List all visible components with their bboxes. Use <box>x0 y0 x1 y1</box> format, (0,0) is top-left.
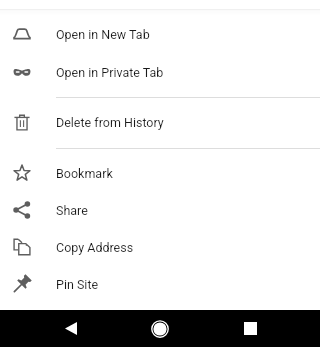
button[interactable]: Home <box>136 310 184 347</box>
button[interactable]: Recent apps <box>226 310 274 347</box>
staticText: Open in Private Tab <box>56 65 164 80</box>
button[interactable]: Back <box>47 310 95 347</box>
button[interactable]: Pin Site <box>0 265 320 303</box>
staticText: Pin Site <box>56 277 99 292</box>
button[interactable]: Bookmark <box>0 154 320 192</box>
button[interactable]: Open in Private Tab <box>0 53 320 91</box>
button[interactable]: Delete from History <box>0 103 320 141</box>
staticText: Bookmark <box>56 166 113 181</box>
button[interactable]: Copy Address <box>0 228 320 266</box>
staticText: Open in New Tab <box>56 27 150 42</box>
button[interactable]: Open in New Tab <box>0 15 320 53</box>
staticText: Share <box>56 203 88 218</box>
button[interactable]: Share <box>0 191 320 229</box>
staticText: Delete from History <box>56 115 164 130</box>
staticText: Copy Address <box>56 240 134 255</box>
